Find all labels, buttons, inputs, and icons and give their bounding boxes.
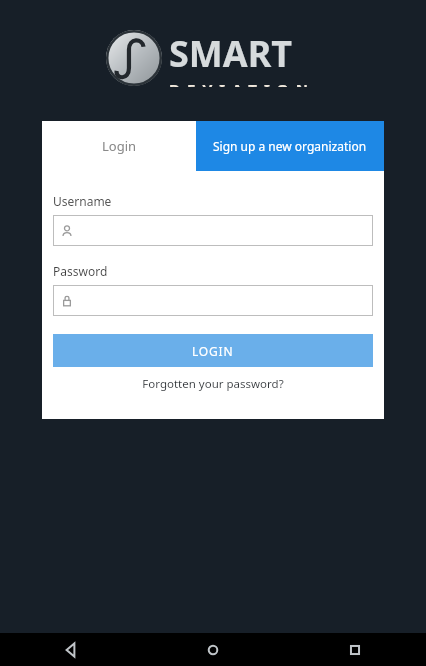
staticText: Login [102,137,137,155]
button[interactable]: Back [0,633,142,666]
staticText: Username [53,193,112,209]
button[interactable]: Username field [53,215,373,246]
button[interactable]: Recents [284,633,426,666]
staticText: SMART [169,29,293,78]
button[interactable]: Forgotten your password? [53,376,373,392]
button[interactable]: Login [42,121,196,171]
staticText: DEVIATION [169,79,315,87]
button[interactable]: LOGIN [53,334,373,367]
staticText: Password [53,263,108,279]
button[interactable]: Sign up a new organization [196,121,384,171]
button[interactable]: Password field [53,285,373,316]
staticText: Sign up a new organization [213,138,367,154]
staticText: LOGIN [192,343,234,359]
staticText: Forgotten your password? [142,376,284,392]
button[interactable]: Home [142,633,284,666]
